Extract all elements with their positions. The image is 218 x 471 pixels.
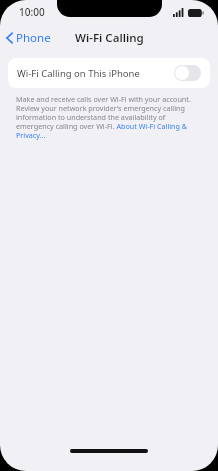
- staticText: Make and receive calls over Wi-Fi with y…: [16, 94, 202, 140]
- staticText: 10:00: [19, 5, 45, 19]
- staticText: Wi-Fi Calling: [75, 30, 144, 46]
- button[interactable]: Wi-Fi Calling on This iPhone: [8, 58, 210, 88]
- staticText: Wi-Fi Calling on This iPhone: [17, 67, 140, 80]
- button[interactable]: Wi-Fi Calling toggle, off: [174, 65, 201, 81]
- staticText: Phone: [16, 30, 51, 46]
- button[interactable]: Phone: [0, 26, 59, 50]
